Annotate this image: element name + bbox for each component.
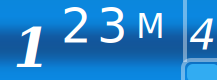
staticText: M bbox=[136, 7, 165, 46]
staticText: 4 bbox=[189, 10, 216, 60]
staticText: 1 bbox=[13, 17, 50, 80]
staticText: 2 bbox=[61, 0, 92, 54]
staticText: 3 bbox=[97, 0, 128, 54]
